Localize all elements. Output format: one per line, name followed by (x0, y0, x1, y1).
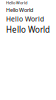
staticText: Hello World (6, 14, 44, 23)
staticText: Hello World (6, 24, 50, 35)
staticText: Hello World (6, 0, 27, 5)
staticText: Hello World (6, 6, 33, 13)
